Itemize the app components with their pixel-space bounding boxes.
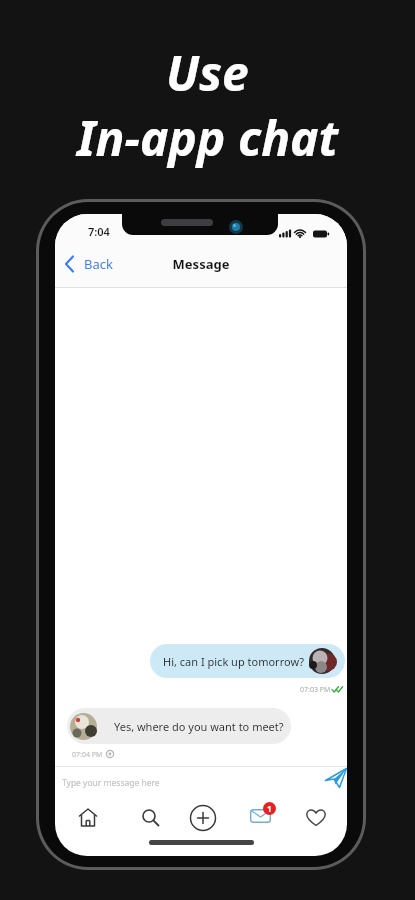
staticText: Message — [55, 255, 347, 273]
button[interactable] — [305, 808, 327, 828]
staticText: Back — [84, 255, 113, 273]
staticText: Type your message here — [62, 777, 160, 789]
button[interactable]: Type your message here — [55, 767, 347, 797]
button[interactable] — [140, 807, 162, 829]
button[interactable] — [189, 804, 217, 832]
button[interactable] — [77, 807, 99, 829]
staticText: 7:04 — [88, 224, 110, 239]
button[interactable]: Hi, can I pick up tomorrow? — [150, 644, 345, 678]
staticText: 1 — [267, 803, 272, 814]
button[interactable]: 1 — [250, 802, 276, 828]
staticText: 07:04 PM — [72, 750, 103, 760]
staticText: 07:03 PM — [300, 685, 331, 695]
button[interactable]: Back — [61, 252, 121, 276]
staticText: Hi, can I pick up tomorrow? — [163, 654, 305, 669]
staticText: Yes, where do you want to meet? — [114, 719, 284, 734]
button[interactable] — [325, 768, 347, 792]
button[interactable]: Yes, where do you want to meet? — [67, 708, 291, 744]
staticText: In-app chat — [77, 105, 339, 170]
staticText: Use — [166, 40, 249, 105]
